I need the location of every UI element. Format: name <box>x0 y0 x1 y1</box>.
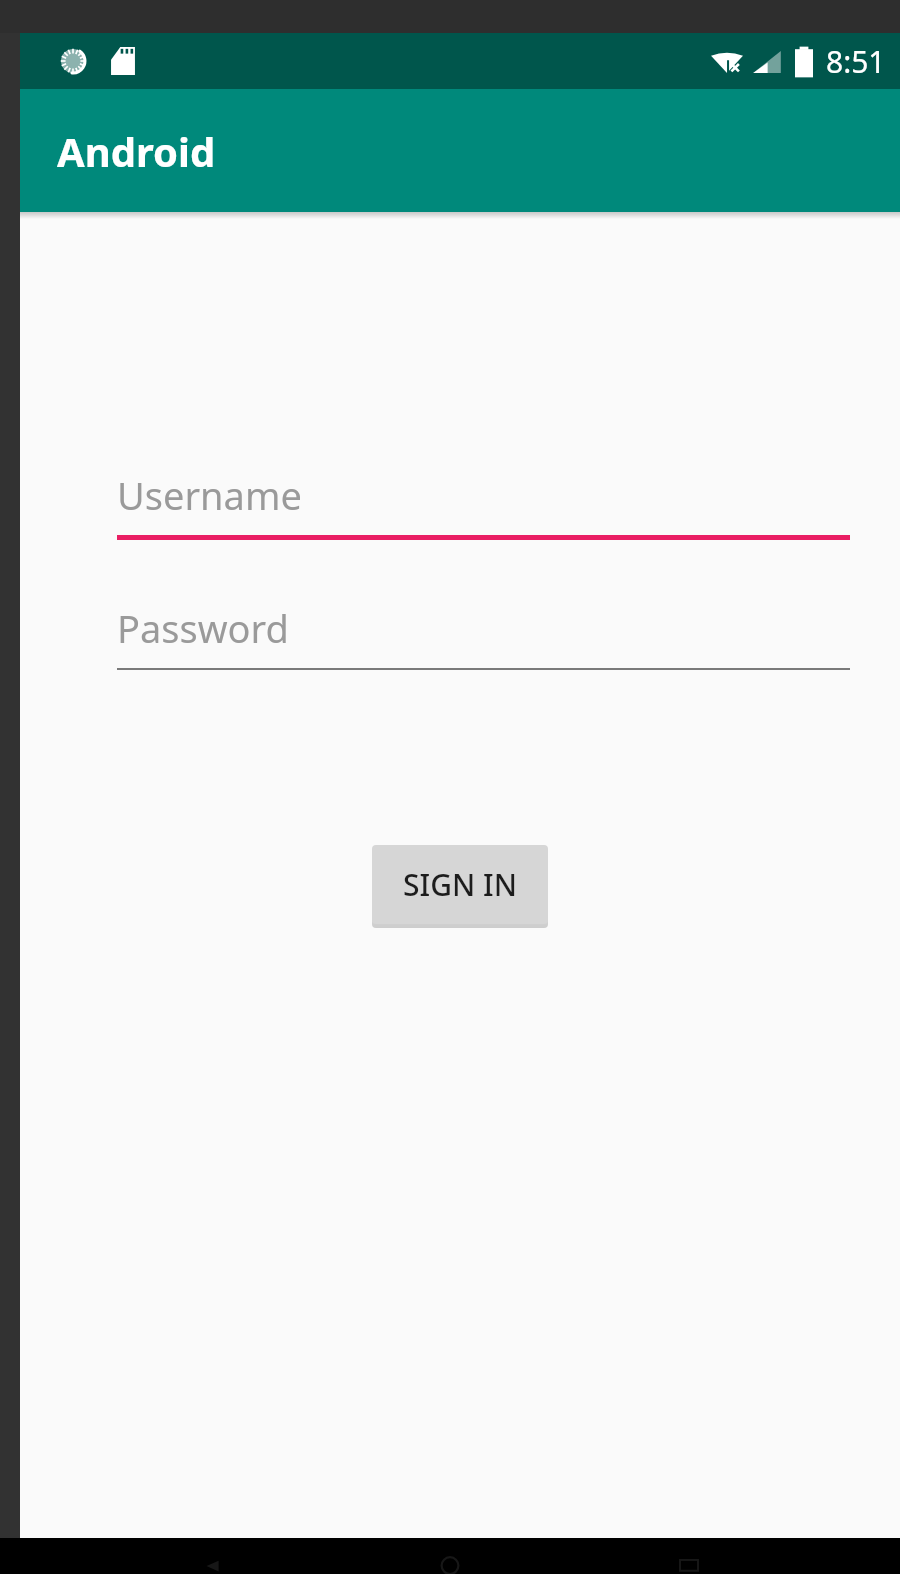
staticText: 8:51 <box>826 41 886 82</box>
button[interactable]: Back <box>185 1538 239 1574</box>
button[interactable]: Home <box>423 1538 477 1574</box>
staticText: SIGN IN <box>403 864 517 905</box>
button[interactable]: Recent apps <box>662 1538 716 1574</box>
staticText: Password <box>117 602 289 654</box>
button[interactable]: SIGN IN <box>372 845 548 924</box>
button[interactable]: Username <box>117 465 850 540</box>
button[interactable]: Password <box>117 598 850 670</box>
staticText: Android <box>57 124 216 178</box>
staticText: Username <box>117 469 302 521</box>
